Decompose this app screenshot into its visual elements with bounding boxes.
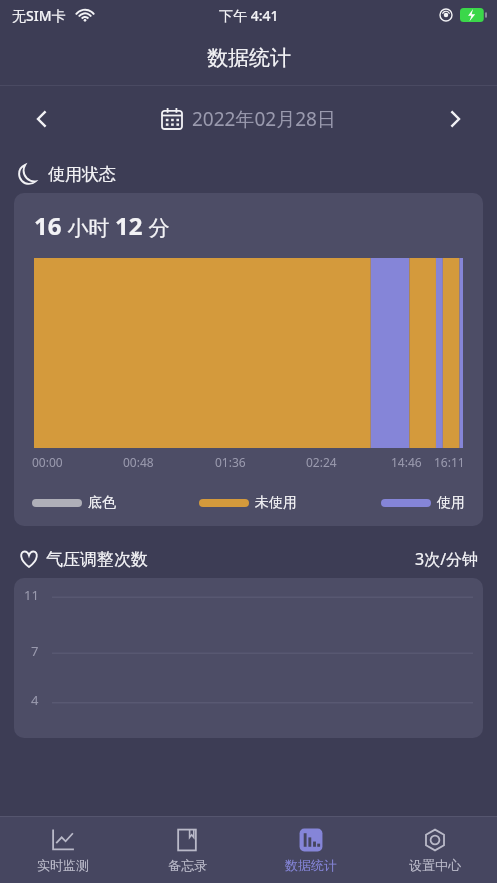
- staticText: 14:46: [391, 454, 422, 470]
- staticText: 11: [24, 586, 39, 604]
- button[interactable]: 数据统计: [249, 817, 373, 883]
- staticText: 气压调整次数: [46, 549, 148, 570]
- staticText: 00:48: [123, 454, 154, 470]
- staticText: 01:36: [215, 454, 246, 470]
- staticText: 使用状态: [48, 164, 116, 185]
- button[interactable]: 设置中心: [373, 817, 497, 883]
- staticText: 数据统计: [285, 857, 337, 873]
- staticText: 无SIM卡: [12, 6, 66, 25]
- button[interactable]: 上一天: [14, 91, 70, 147]
- button[interactable]: 16: [14, 193, 483, 526]
- staticText: 2022年02月28日: [192, 106, 336, 132]
- staticText: 3次/分钟: [415, 548, 479, 570]
- staticText: 实时监测: [37, 857, 89, 873]
- button[interactable]: 2022年02月28日: [70, 106, 427, 132]
- button[interactable]: 实时监测: [0, 817, 125, 883]
- staticText: 16: [34, 209, 62, 242]
- staticText: 00:00: [32, 454, 63, 470]
- button[interactable]: 下一天: [427, 91, 483, 147]
- staticText: 设置中心: [409, 857, 461, 873]
- staticText: 02:24: [306, 454, 337, 470]
- staticText: 7: [31, 642, 39, 660]
- staticText: 分: [143, 213, 170, 242]
- staticText: 底色: [88, 494, 116, 512]
- staticText: 使用: [437, 494, 465, 512]
- button[interactable]: 备忘录: [125, 817, 249, 883]
- staticText: 16:11: [434, 454, 465, 470]
- staticText: 下午 4:41: [219, 6, 279, 25]
- staticText: 12: [115, 209, 143, 242]
- staticText: 未使用: [255, 494, 297, 512]
- staticText: 小时: [62, 213, 115, 242]
- staticText: 备忘录: [168, 857, 207, 873]
- staticText: 数据统计: [207, 45, 291, 71]
- staticText: 4: [31, 691, 39, 709]
